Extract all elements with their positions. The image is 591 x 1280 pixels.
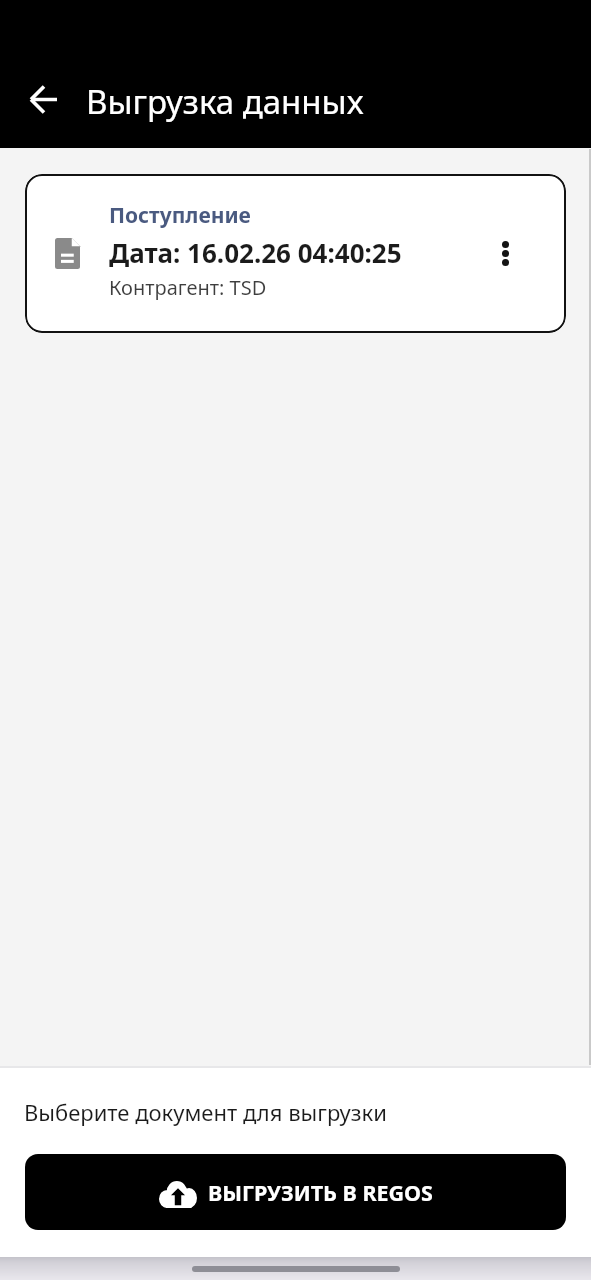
staticText: Дата: 16.02.26 04:40:25 bbox=[109, 235, 402, 270]
button[interactable]: ВЫГРУЗИТЬ В REGOS bbox=[25, 1154, 566, 1230]
staticText: ВЫГРУЗИТЬ В REGOS bbox=[208, 1178, 433, 1207]
staticText: Поступление bbox=[109, 201, 251, 230]
staticText: Выгрузка данных bbox=[86, 79, 364, 124]
button[interactable]: Поступление bbox=[25, 174, 566, 333]
staticText: Контрагент: TSD bbox=[109, 274, 267, 301]
button[interactable]: More options bbox=[482, 230, 529, 277]
button[interactable]: Back bbox=[19, 75, 68, 124]
staticText: Выберите документ для выгрузки bbox=[24, 1097, 387, 1127]
